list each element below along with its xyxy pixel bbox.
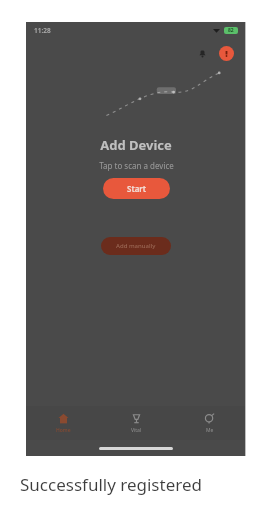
staticText: Successfully registered: [20, 473, 260, 496]
button[interactable]: Alerts: [219, 46, 234, 61]
staticText: 82: [228, 27, 234, 34]
staticText: Me: [206, 427, 214, 434]
button[interactable]: Notifications: [193, 44, 211, 62]
button[interactable]: Me: [173, 406, 246, 440]
staticText: Start: [127, 183, 147, 194]
staticText: Add Device: [100, 136, 172, 154]
button[interactable]: Add manually: [101, 237, 171, 255]
button[interactable]: Vital: [100, 406, 173, 440]
staticText: Tap to scan a device: [99, 160, 174, 171]
button[interactable]: Home: [26, 406, 100, 440]
staticText: Add manually: [116, 242, 156, 250]
staticText: Vital: [131, 427, 142, 434]
staticText: Home: [56, 427, 71, 434]
staticText: 11:28: [34, 26, 51, 35]
button[interactable]: Start: [103, 178, 170, 199]
